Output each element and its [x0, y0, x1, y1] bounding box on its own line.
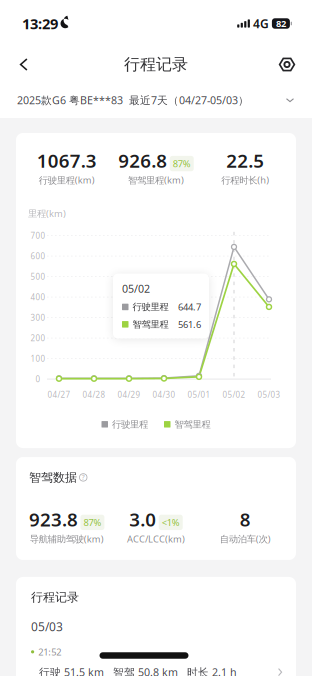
staticText: 行程时长(h) — [221, 174, 269, 186]
staticText: 行驶里程(km) — [39, 174, 95, 186]
button[interactable]: Settings — [269, 48, 305, 80]
staticText: 500 — [30, 271, 45, 282]
staticText: 04/29 — [117, 389, 140, 400]
staticText: 82 — [276, 17, 286, 30]
staticText: 自动泊车(次) — [220, 533, 271, 545]
staticText: 22.5 — [226, 148, 264, 173]
staticText: 2025款G6 粤BE***83 最近7天（04/27-05/03） — [17, 93, 249, 107]
staticText: 04/27 — [47, 389, 70, 400]
staticText: 智驾里程 — [174, 419, 210, 430]
staticText: 300 — [30, 312, 45, 323]
staticText: 100 — [30, 353, 45, 364]
button[interactable]: 2025款G6 粤BE***83 最近7天（04/27-05/03） — [0, 82, 312, 118]
staticText: 926.8 — [118, 148, 167, 173]
staticText: 4G — [253, 15, 269, 31]
staticText: 04/28 — [82, 389, 105, 400]
staticText: 05/01 — [187, 389, 210, 400]
staticText: 05/03 — [31, 619, 63, 635]
staticText: 05/02 — [122, 282, 150, 296]
staticText: 行驶里程 — [112, 419, 148, 430]
staticText: 智驾里程 — [132, 319, 168, 330]
staticText: 智驾里程(km) — [128, 174, 184, 186]
staticText: 200 — [30, 333, 45, 343]
staticText: 923.8 — [29, 507, 78, 532]
staticText: 21:52 — [38, 646, 61, 658]
staticText: 13:29 — [22, 14, 58, 33]
staticText: 行程记录 — [31, 590, 79, 605]
staticText: 行驶里程 — [132, 301, 168, 313]
staticText: 644.7 — [178, 301, 201, 313]
staticText: 智驾数据 — [29, 470, 77, 485]
staticText: 0 — [35, 374, 40, 384]
staticText: ACC/LCC(km) — [127, 533, 185, 545]
staticText: ? — [82, 473, 85, 482]
staticText: 1067.3 — [37, 148, 97, 173]
staticText: 05/03 — [257, 389, 280, 400]
staticText: 700 — [30, 230, 45, 241]
staticText: 87% — [83, 516, 101, 529]
staticText: 行驶 51.5 km 智驾 50.8 km 时长 2.1 h — [39, 665, 237, 676]
staticText: 里程(km) — [28, 207, 66, 220]
staticText: 8 — [240, 507, 251, 532]
button[interactable]: 行驶 51.5 km 智驾 50.8 km 时长 2.1 h — [31, 658, 284, 676]
staticText: 05/02 — [222, 389, 245, 400]
staticText: 600 — [30, 251, 45, 261]
staticText: 导航辅助驾驶(km) — [30, 533, 104, 545]
staticText: 3.0 — [129, 507, 156, 532]
staticText: 561.6 — [178, 318, 201, 330]
staticText: <1% — [162, 516, 180, 529]
button[interactable]: Back — [6, 48, 42, 80]
staticText: 87% — [173, 157, 191, 170]
staticText: 行程记录 — [124, 55, 188, 74]
staticText: 04/30 — [152, 389, 175, 400]
staticText: 400 — [30, 292, 45, 302]
